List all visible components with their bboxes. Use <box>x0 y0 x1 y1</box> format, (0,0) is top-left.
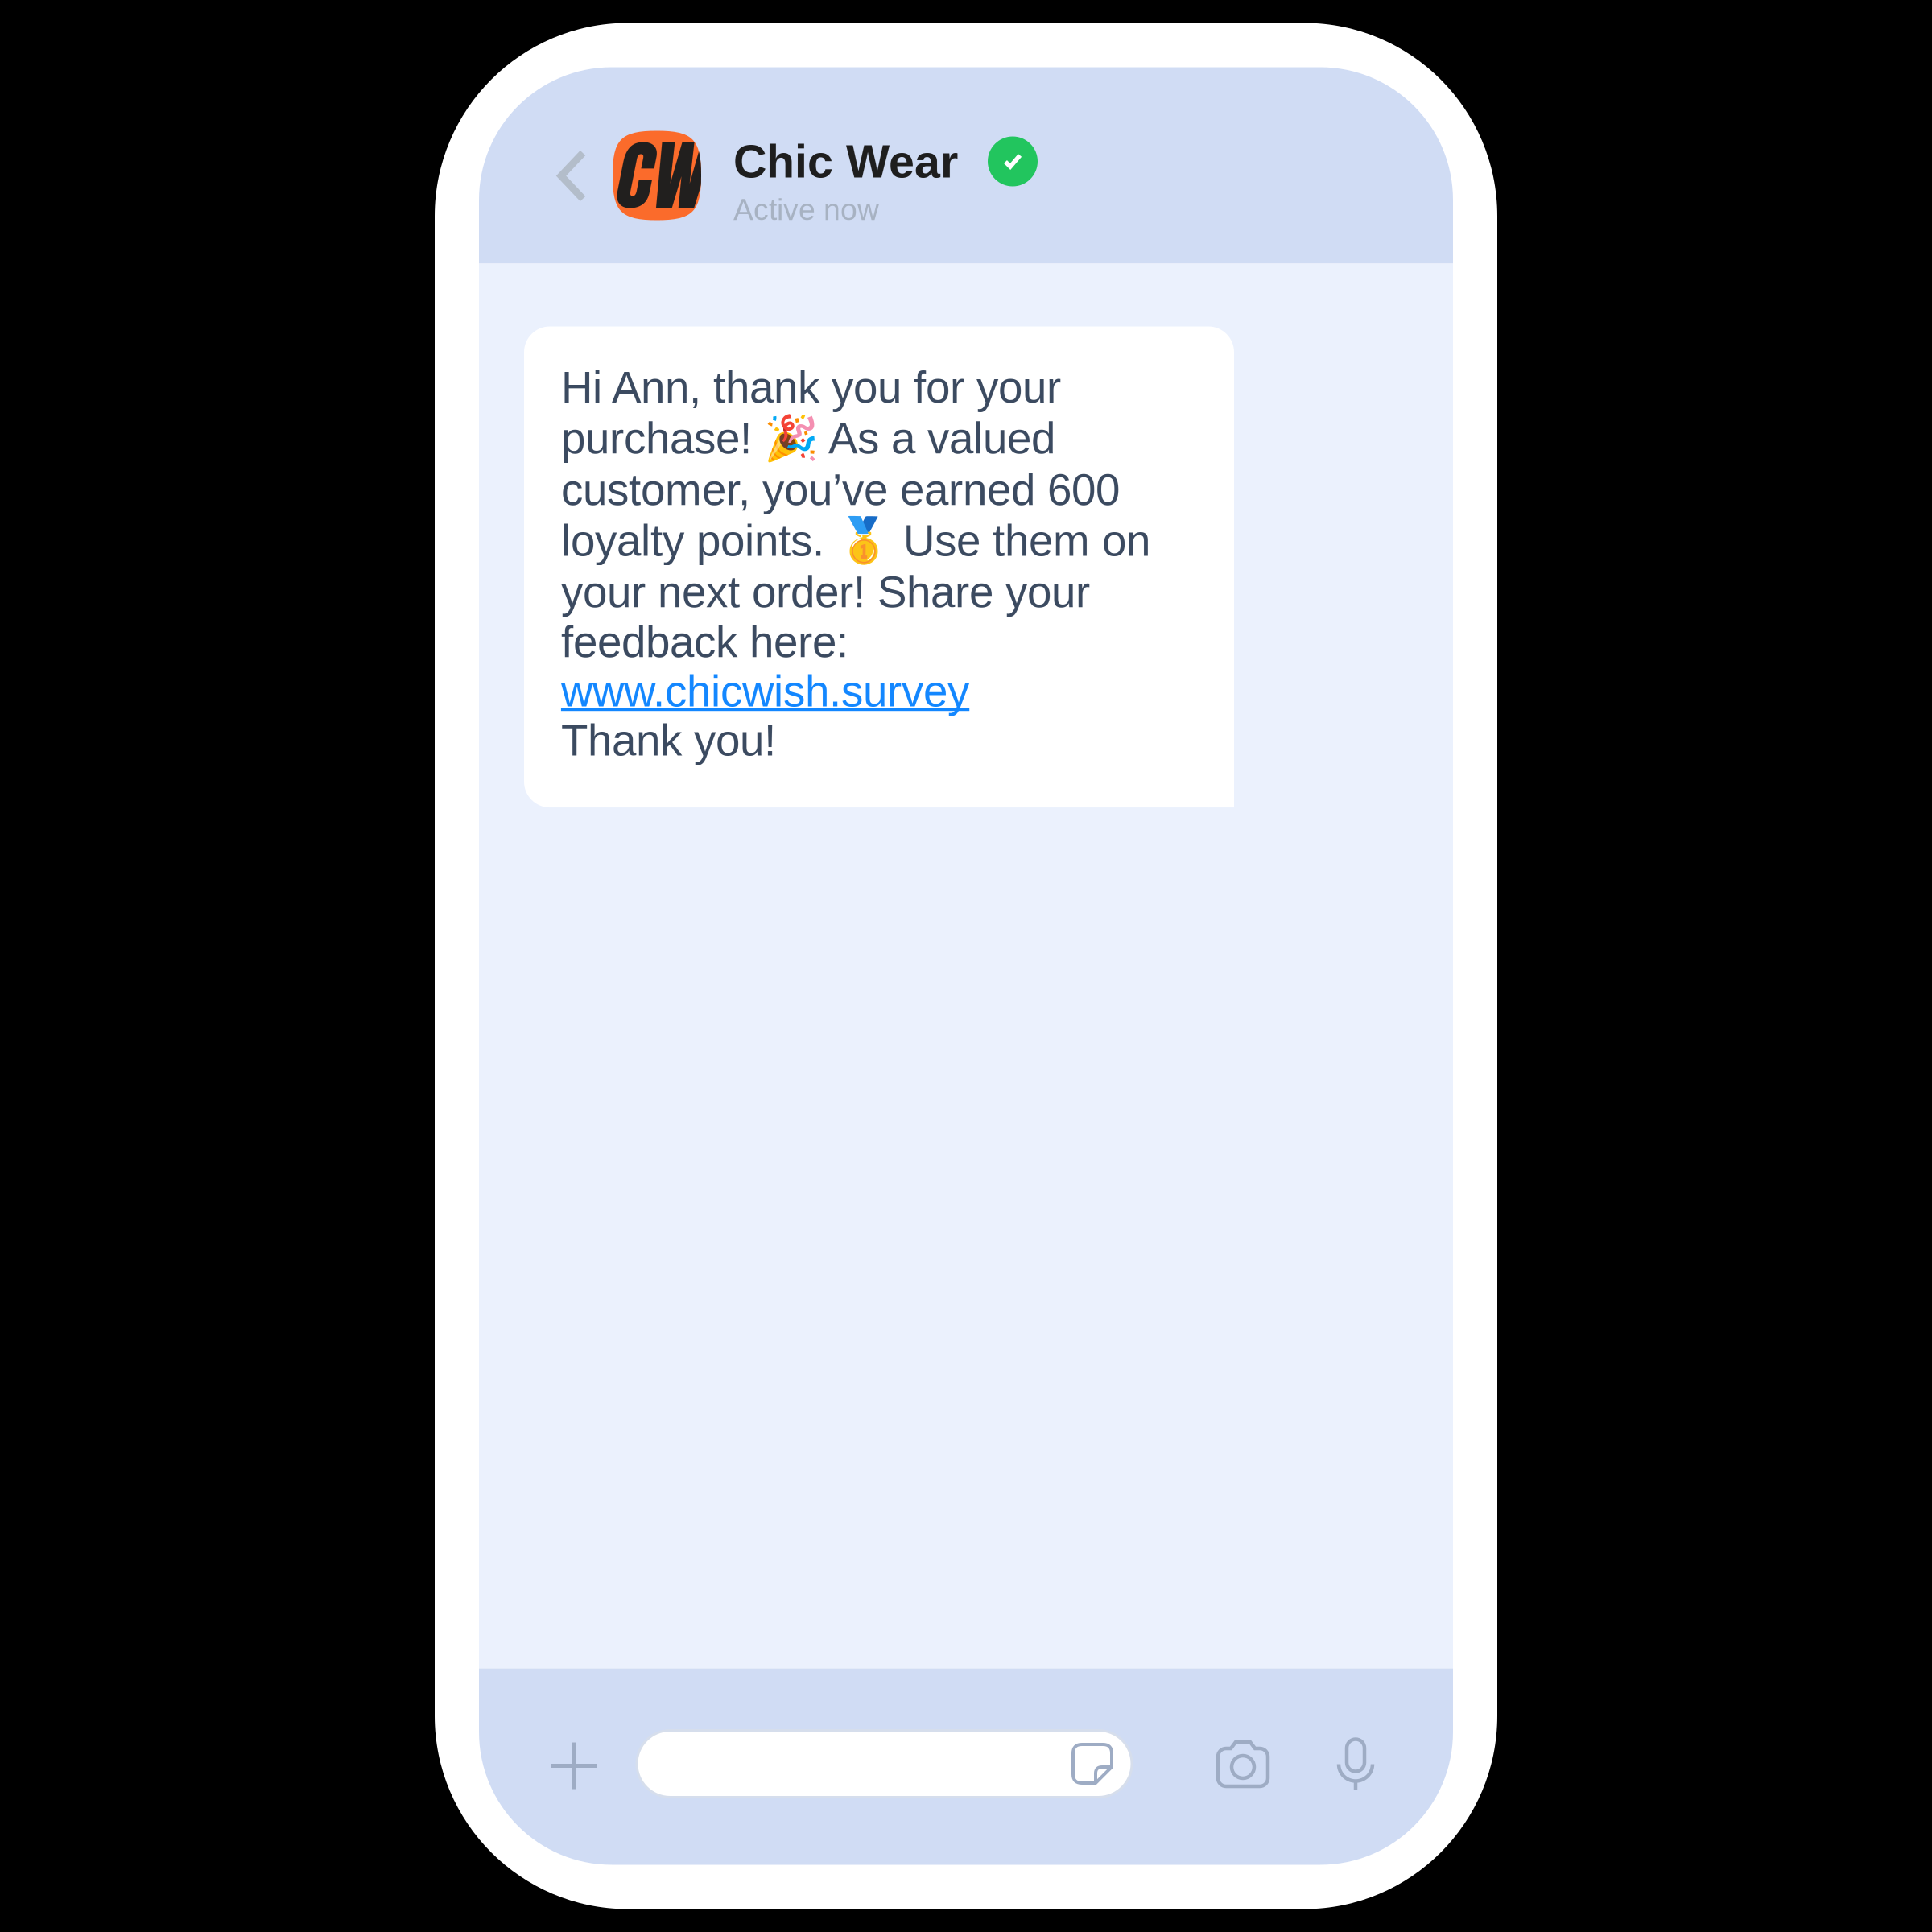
button[interactable]: Camera <box>1199 1720 1287 1808</box>
button[interactable]: Back <box>542 140 603 212</box>
staticText: www.chicwish.survey <box>561 666 969 716</box>
staticText: Active now <box>733 193 879 226</box>
staticText: CW <box>612 118 702 233</box>
button[interactable]: Voice message <box>1311 1720 1400 1808</box>
button[interactable]: Add attachment <box>530 1721 618 1810</box>
staticText: Thank you! <box>561 716 776 765</box>
staticText: Chic Wear <box>733 136 958 187</box>
staticText: Hi Ann, thank you for your purchase! 🎉 A… <box>561 363 1150 666</box>
button[interactable]: Message <box>637 1730 1132 1797</box>
